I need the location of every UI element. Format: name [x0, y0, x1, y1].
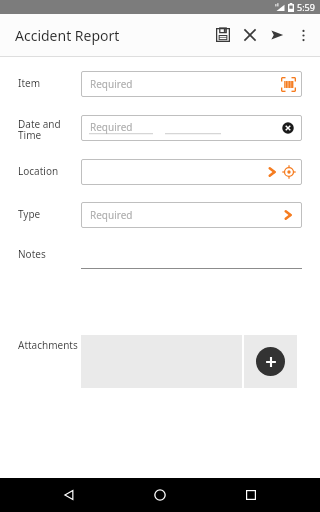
button[interactable]: Close	[236, 14, 263, 56]
button[interactable]: Required	[81, 71, 302, 97]
button[interactable]: Required	[81, 202, 302, 228]
button[interactable]: Add attachment	[244, 335, 297, 388]
button[interactable]: Notes	[0, 247, 320, 269]
staticText: Accident Report	[15, 26, 120, 45]
button[interactable]: Clear date and time	[281, 121, 295, 135]
button[interactable]: Back	[47, 478, 91, 512]
staticText: Required	[90, 120, 133, 134]
button[interactable]: Select location	[81, 159, 302, 185]
staticText: Attachments	[18, 338, 78, 352]
button[interactable]: Home	[138, 478, 182, 512]
staticText: Required	[90, 208, 133, 222]
staticText: Location	[18, 164, 59, 178]
staticText: Notes	[18, 247, 46, 261]
button[interactable]: Use current location	[281, 164, 297, 180]
button[interactable]: More options	[290, 14, 317, 56]
staticText: Type	[18, 207, 41, 221]
staticText: 5:59	[297, 1, 315, 13]
staticText: Required	[90, 77, 133, 91]
button[interactable]: Required	[81, 115, 302, 141]
button[interactable]: Recent apps	[229, 478, 273, 512]
button[interactable]: Select location	[265, 165, 279, 179]
button[interactable]: Scan barcode	[279, 75, 297, 93]
staticText: Item	[18, 76, 40, 90]
button[interactable]: Select type	[281, 208, 295, 222]
staticText: Date and Time	[18, 117, 61, 142]
button[interactable]: Send	[263, 14, 290, 56]
button[interactable]: Save	[209, 14, 236, 56]
